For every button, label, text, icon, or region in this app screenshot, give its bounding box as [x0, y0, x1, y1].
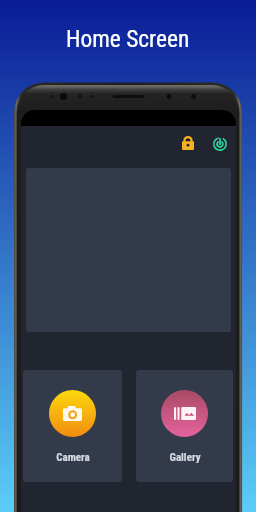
staticText: Gallery	[169, 451, 201, 464]
staticText: Home Screen	[66, 25, 190, 52]
button[interactable]: Power	[207, 131, 233, 157]
button[interactable]: Lock screen	[175, 130, 201, 156]
button[interactable]: Camera	[23, 370, 122, 482]
button[interactable]: Gallery	[136, 370, 233, 482]
staticText: Camera	[56, 451, 90, 464]
